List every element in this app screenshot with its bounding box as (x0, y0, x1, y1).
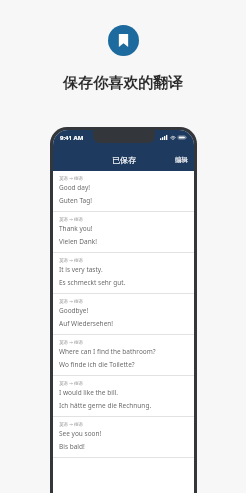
staticText: It is very tasty. (59, 265, 103, 274)
button[interactable]: 英语 → 德语 (53, 212, 194, 252)
staticText: 英语 → 德语 (59, 216, 84, 222)
staticText: 英语 → 德语 (59, 339, 84, 345)
staticText: Where can I find the bathroom? (59, 347, 156, 356)
staticText: 英语 → 德语 (59, 257, 84, 263)
staticText: Bis bald! (59, 442, 85, 451)
button[interactable]: 英语 → 德语 (53, 376, 194, 416)
staticText: Good day! (59, 183, 90, 192)
staticText: Thank you! (59, 224, 93, 233)
staticText: I would like the bill. (59, 388, 118, 397)
button[interactable]: 英语 → 德语 (53, 335, 194, 375)
button[interactable]: 英语 → 德语 (53, 294, 194, 334)
staticText: 已保存 (112, 155, 136, 165)
staticText: Vielen Dank! (59, 237, 97, 246)
button[interactable]: 编辑 (169, 152, 194, 168)
staticText: Ich hätte gerne die Rechnung. (59, 401, 152, 410)
staticText: See you soon! (59, 429, 102, 438)
staticText: 保存你喜欢的翻译 (63, 74, 183, 93)
staticText: Guten Tag! (59, 196, 92, 205)
button[interactable]: 英语 → 德语 (53, 253, 194, 293)
staticText: Auf Wiedersehen! (59, 319, 114, 328)
staticText: 英语 → 德语 (59, 298, 84, 304)
staticText: Goodbye! (59, 306, 89, 315)
button[interactable]: 英语 → 德语 (53, 417, 194, 457)
staticText: 9:41 AM (60, 134, 84, 142)
staticText: 英语 → 德语 (59, 380, 84, 386)
staticText: Es schmeckt sehr gut. (59, 278, 126, 287)
staticText: 英语 → 德语 (59, 421, 84, 427)
staticText: 英语 → 德语 (59, 175, 84, 181)
staticText: Wo finde ich die Toilette? (59, 360, 135, 369)
button[interactable]: 英语 → 德语 (53, 171, 194, 211)
staticText: 编辑 (175, 156, 188, 164)
